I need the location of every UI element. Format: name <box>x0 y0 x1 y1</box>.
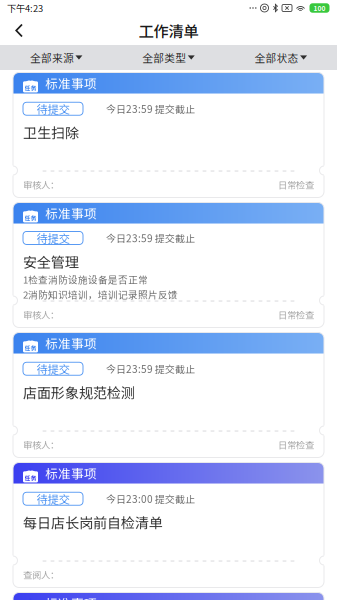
staticText: 标准事项 <box>45 334 97 352</box>
button[interactable]: 任务 <box>13 592 324 600</box>
staticText: 任务 <box>24 83 36 92</box>
staticText: 100 <box>313 3 325 13</box>
button[interactable]: 任务 <box>13 462 324 587</box>
button[interactable]: 全部来源 <box>0 45 112 70</box>
staticText: 审核人： <box>23 178 59 191</box>
staticText: 全部来源 <box>30 50 74 65</box>
staticText: 日常检查 <box>278 438 314 451</box>
staticText: 工作清单 <box>138 19 198 42</box>
staticText: 审核人： <box>23 438 59 451</box>
staticText: 今日23:00 提交截止 <box>106 491 195 506</box>
staticText: 待提交 <box>36 100 69 117</box>
staticText: 下午4:23 <box>7 1 43 15</box>
staticText: 安全管理 <box>23 251 79 271</box>
button[interactable]: 返回 <box>0 16 38 45</box>
staticText: 待提交 <box>36 490 69 507</box>
staticText: 标准事项 <box>45 204 97 222</box>
staticText: 任务 <box>24 473 36 482</box>
staticText: 1检查消防设施设备是否正常 <box>23 272 148 286</box>
staticText: 日常检查 <box>278 308 314 321</box>
staticText: 标准事项 <box>45 74 97 92</box>
button[interactable]: 任务 <box>13 332 324 457</box>
staticText: 标准事项 <box>45 594 97 600</box>
staticText: 待提交 <box>36 230 69 246</box>
staticText: 店面形象规范检测 <box>23 382 135 402</box>
staticText: 任务 <box>24 213 36 222</box>
staticText: 任务 <box>24 343 36 352</box>
staticText: 卫生扫除 <box>23 122 79 142</box>
staticText: 每日店长岗前自检清单 <box>23 512 163 532</box>
staticText: 审核人： <box>23 308 59 321</box>
button[interactable]: 全部状态 <box>225 45 337 70</box>
staticText: 全部类型 <box>142 50 186 65</box>
button[interactable]: 全部类型 <box>112 45 225 70</box>
staticText: 今日23:59 提交截止 <box>106 361 195 376</box>
staticText: 待提交 <box>36 360 69 377</box>
staticText: 日常检查 <box>278 178 314 191</box>
staticText: 全部状态 <box>255 50 299 65</box>
button[interactable]: 任务 <box>13 72 324 197</box>
staticText: 2消防知识培训，培训记录照片反馈 <box>23 287 178 301</box>
staticText: 今日23:59 提交截止 <box>106 101 195 116</box>
staticText: 今日23:59 提交截止 <box>106 231 195 245</box>
staticText: 标准事项 <box>45 464 97 482</box>
staticText: 查阅人： <box>23 568 59 581</box>
button[interactable]: 任务 <box>13 202 324 327</box>
